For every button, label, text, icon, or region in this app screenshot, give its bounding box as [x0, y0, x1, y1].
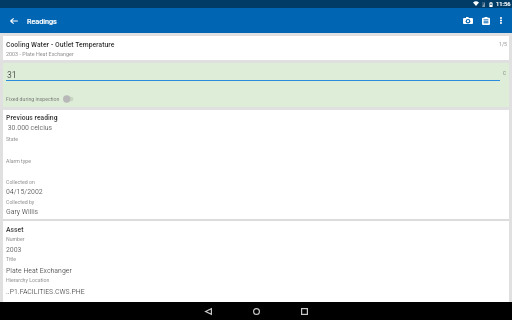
staticText: Previous reading: [6, 114, 58, 122]
button[interactable]: Camera: [457, 10, 478, 31]
staticText: C: [503, 71, 506, 76]
button[interactable]: Fixed during inspection: [6, 95, 75, 103]
staticText: Hierarchy Location: [6, 277, 50, 283]
staticText: State: [6, 136, 19, 142]
staticText: 1/5: [499, 41, 507, 47]
staticText: 04/15/2002: [6, 188, 43, 196]
staticText: Collected by: [6, 199, 35, 205]
button[interactable]: Notes: [477, 12, 494, 29]
staticText: Collected on: [6, 179, 35, 185]
staticText: ..P1.FACILITIES.CWS.PHE: [6, 288, 85, 296]
staticText: 30.000 celcius: [6, 124, 53, 132]
staticText: Title: [6, 256, 17, 262]
button[interactable]: Back: [197, 302, 219, 320]
staticText: 2003: [6, 246, 22, 254]
staticText: Plate Heat Exchanger: [6, 267, 72, 275]
button[interactable]: Recents: [293, 302, 315, 320]
button[interactable]: More options: [493, 13, 508, 28]
staticText: 2003 - Plate Heat Exchanger: [6, 51, 74, 57]
staticText: Alarm type: [6, 158, 31, 164]
other: Fixed during inspection toggle: [63, 95, 75, 103]
staticText: Gary Willis: [6, 208, 39, 216]
staticText: Number: [6, 236, 25, 242]
button[interactable]: Home: [245, 302, 267, 320]
staticText: Readings: [27, 17, 57, 25]
staticText: Fixed during inspection: [6, 96, 60, 102]
button[interactable]: Back: [4, 11, 23, 30]
staticText: 11:56: [496, 1, 511, 8]
staticText: Cooling Water - Outlet Temperature: [6, 41, 115, 49]
staticText: 31: [7, 70, 17, 80]
staticText: Asset: [6, 226, 24, 234]
